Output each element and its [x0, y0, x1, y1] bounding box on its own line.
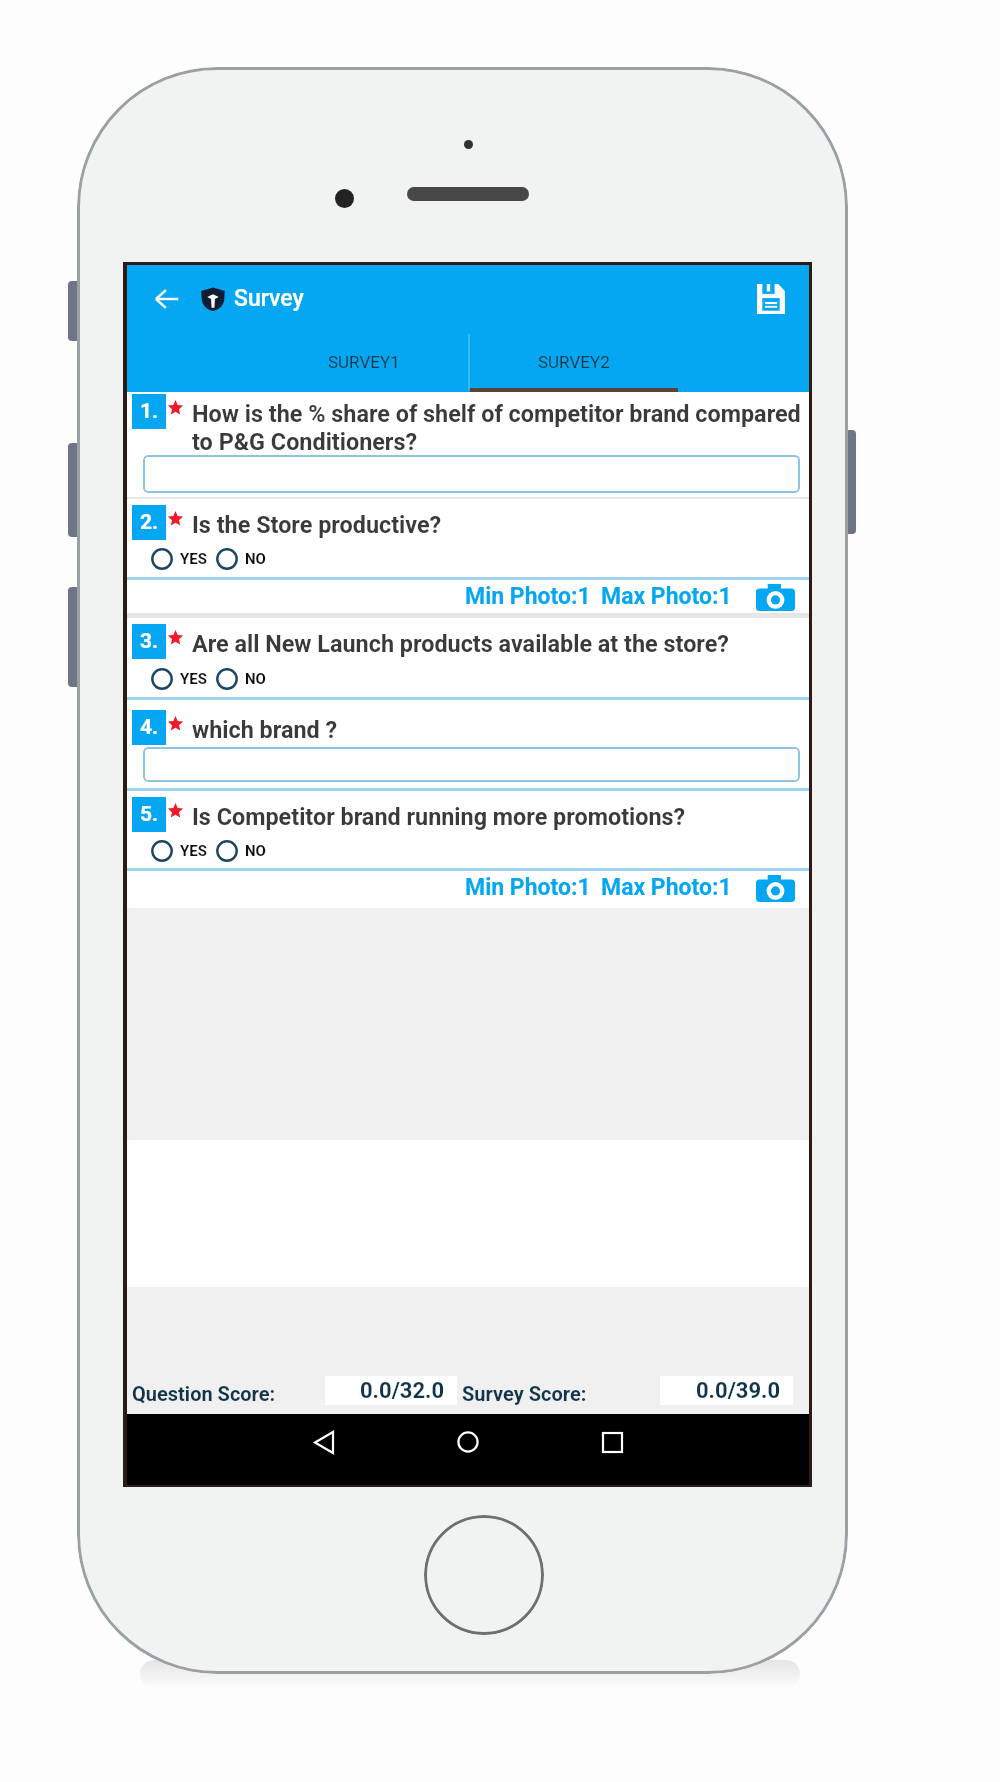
staticText: Is Competitor brand running more promoti… — [192, 803, 686, 830]
button[interactable]: YES — [151, 548, 207, 570]
staticText: Question Score: — [132, 1382, 276, 1405]
staticText: SURVEY2 — [538, 352, 610, 372]
staticText: NO — [245, 842, 266, 860]
staticText: 1. — [140, 399, 159, 424]
staticText: Are all New Launch products available at… — [192, 630, 729, 657]
staticText: which brand ? — [192, 716, 338, 743]
staticText: Min Photo:1 — [465, 583, 591, 610]
staticText: Is the Store productive? — [192, 511, 442, 538]
staticText: How is the % share of shelf of competito… — [192, 400, 802, 456]
staticText: 3. — [140, 629, 159, 654]
button[interactable]: NO — [216, 668, 266, 690]
button[interactable]: NO — [216, 548, 266, 570]
button[interactable]: YES — [151, 840, 207, 862]
staticText: YES — [180, 670, 207, 688]
staticText: 4. — [140, 715, 159, 740]
staticText: 0.0/39.0 — [696, 1378, 781, 1404]
staticText: Max Photo:1 — [601, 583, 732, 610]
staticText: YES — [180, 550, 207, 568]
button[interactable]: Back — [302, 1420, 346, 1464]
button[interactable]: Back — [145, 277, 189, 321]
button[interactable]: Take photo — [756, 874, 795, 902]
button[interactable]: Home — [446, 1420, 490, 1464]
button[interactable]: SURVEY1 — [260, 332, 468, 392]
button[interactable]: SURVEY2 — [470, 332, 678, 392]
button[interactable]: Take photo — [756, 583, 795, 611]
button[interactable] — [143, 455, 800, 493]
staticText: SURVEY1 — [328, 352, 400, 372]
staticText: Min Photo:1 — [465, 874, 591, 901]
staticText: 2. — [140, 510, 159, 535]
staticText: Survey Score: — [462, 1382, 587, 1405]
staticText: NO — [245, 550, 266, 568]
staticText: Max Photo:1 — [601, 874, 732, 901]
button[interactable]: Save — [749, 277, 793, 321]
button[interactable]: NO — [216, 840, 266, 862]
staticText: 5. — [140, 802, 159, 827]
staticText: 0.0/32.0 — [360, 1378, 445, 1404]
staticText: YES — [180, 842, 207, 860]
staticText: Survey — [234, 285, 304, 312]
button[interactable]: Recents — [590, 1420, 634, 1464]
button[interactable] — [143, 747, 800, 782]
staticText: NO — [245, 670, 266, 688]
button[interactable]: YES — [151, 668, 207, 690]
